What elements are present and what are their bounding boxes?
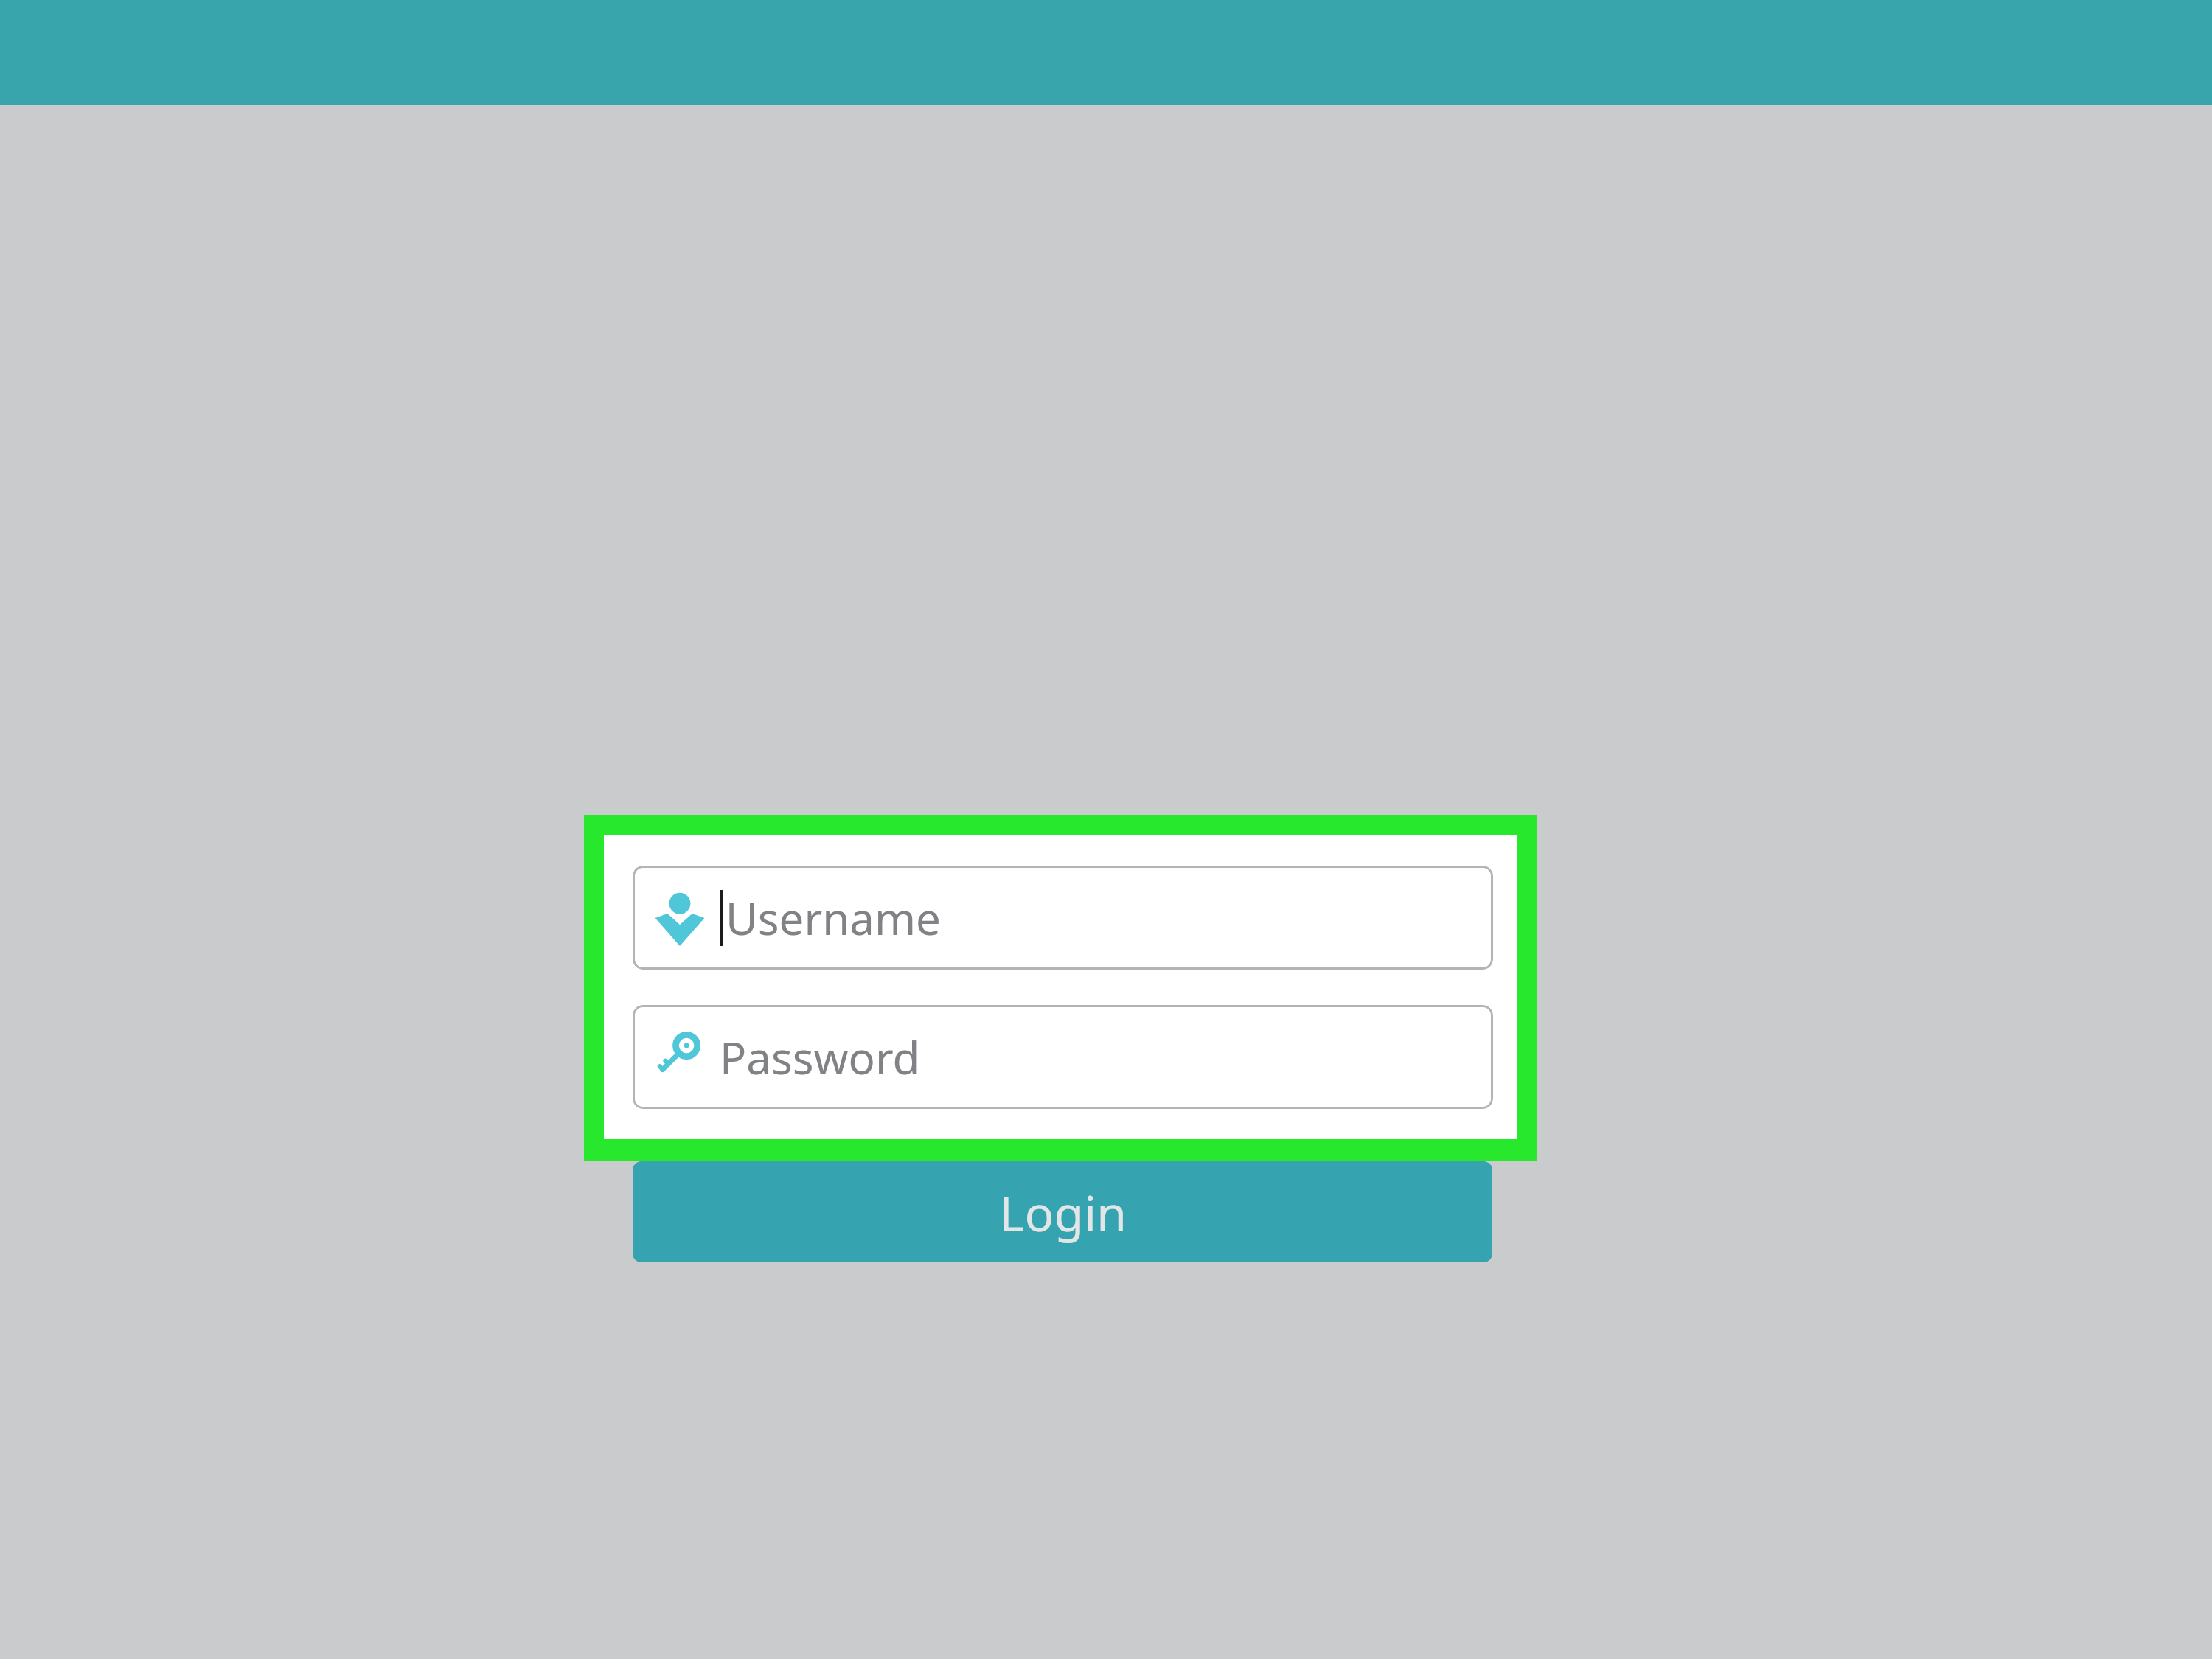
button[interactable]: Password <box>633 1005 1493 1109</box>
staticText: Username <box>726 888 941 948</box>
staticText: Password <box>720 1027 920 1088</box>
other: Password <box>652 1029 708 1085</box>
button[interactable]: Login <box>633 1161 1492 1262</box>
other: Username <box>652 890 708 946</box>
button[interactable]: Username <box>633 866 1493 970</box>
staticText: Login <box>999 1179 1127 1245</box>
